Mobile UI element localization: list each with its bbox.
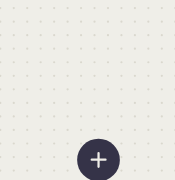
button[interactable]: Add note [0, 0, 175, 180]
